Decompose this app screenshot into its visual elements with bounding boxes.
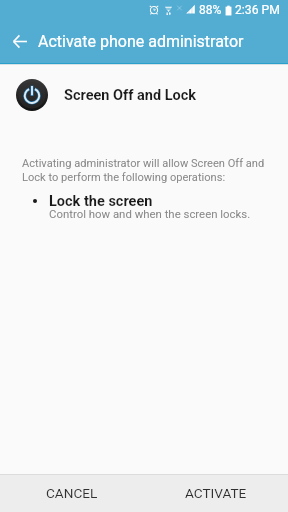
staticText: Activate phone administrator (38, 32, 244, 51)
staticText: 2:36 PM (235, 3, 280, 17)
staticText: Activating administrator will allow Scre… (22, 157, 270, 183)
button[interactable]: ACTIVATE (144, 475, 288, 512)
staticText: Lock the screen (49, 193, 153, 210)
button[interactable]: Navigate up (7, 28, 33, 54)
button[interactable]: CANCEL (0, 475, 144, 512)
staticText: 88% (199, 3, 222, 17)
staticText: ACTIVATE (185, 485, 247, 501)
staticText: Screen Off and Lock (64, 87, 197, 104)
staticText: Control how and when the screen locks. (49, 207, 251, 220)
staticText: CANCEL (46, 485, 98, 501)
